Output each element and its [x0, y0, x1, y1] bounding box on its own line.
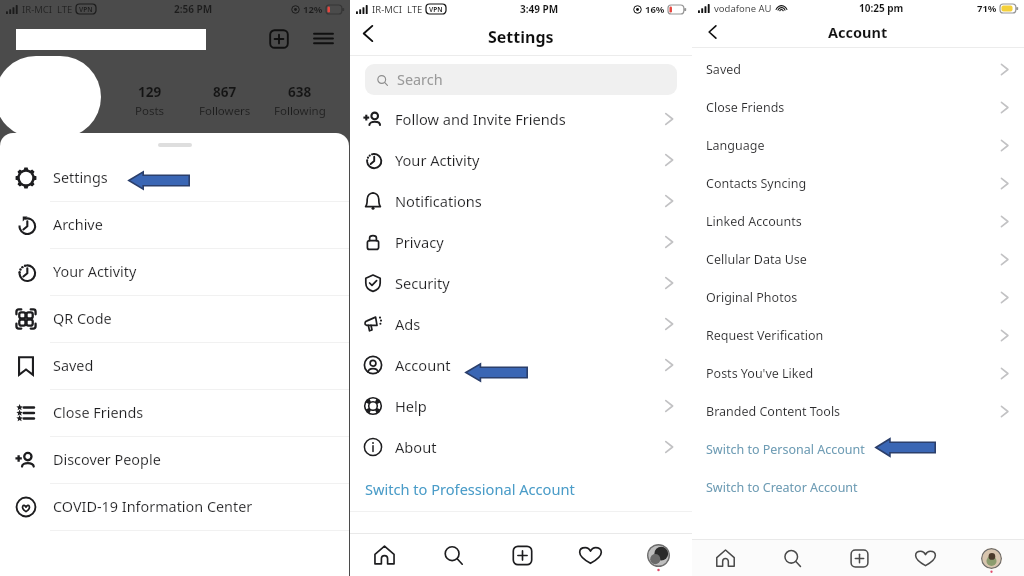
staticText: 12%: [303, 3, 323, 16]
button[interactable]: New post: [488, 534, 556, 576]
button[interactable]: Account: [350, 344, 692, 385]
staticText: Following: [274, 103, 326, 119]
staticText: LTE: [57, 3, 73, 16]
button[interactable]: Branded Content Tools: [692, 392, 1024, 430]
staticText: Security: [395, 273, 450, 293]
staticText: Followers: [199, 103, 251, 119]
button[interactable]: Switch to Professional Account: [350, 467, 692, 511]
button[interactable]: Archive: [0, 202, 349, 248]
button[interactable]: Search: [365, 64, 677, 95]
button[interactable]: Your Activity: [350, 139, 692, 180]
staticText: VPN: [429, 5, 443, 14]
staticText: IR-MCI: [22, 3, 53, 16]
button[interactable]: Search: [759, 540, 826, 576]
staticText: LTE: [407, 3, 423, 16]
staticText: Ads: [395, 314, 421, 334]
button[interactable]: Notifications: [350, 180, 692, 221]
staticText: Saved: [706, 61, 741, 78]
button[interactable]: Contacts Syncing: [692, 164, 1024, 202]
button[interactable]: Profile: [958, 540, 1024, 576]
staticText: vodafone AU: [714, 2, 772, 15]
button[interactable]: Home: [692, 540, 759, 576]
button[interactable]: Help: [350, 385, 692, 426]
button[interactable]: Home: [350, 534, 419, 576]
button[interactable]: Switch to Creator Account: [692, 468, 1024, 506]
staticText: 129: [138, 83, 162, 101]
staticText: Language: [706, 137, 765, 154]
staticText: Close Friends: [53, 403, 144, 423]
staticText: Follow and Invite Friends: [395, 109, 566, 129]
staticText: COVID-19 Information Center: [53, 497, 253, 517]
button[interactable]: Close Friends: [692, 88, 1024, 126]
staticText: Search: [397, 70, 443, 90]
staticText: QR Code: [53, 309, 112, 329]
button[interactable]: Privacy: [350, 221, 692, 262]
staticText: Cellular Data Use: [706, 251, 807, 268]
staticText: Linked Accounts: [706, 213, 802, 230]
button[interactable]: About: [350, 426, 692, 467]
button[interactable]: Linked Accounts: [692, 202, 1024, 240]
button[interactable]: Switch to Personal Account: [692, 430, 1024, 468]
button[interactable]: Saved: [692, 50, 1024, 88]
button[interactable]: Security: [350, 262, 692, 303]
staticText: Your Activity: [53, 262, 137, 282]
button[interactable]: Back: [353, 18, 384, 49]
staticText: Privacy: [395, 232, 444, 252]
staticText: 10:25 pm: [859, 1, 904, 15]
staticText: Saved: [53, 356, 94, 376]
staticText: Settings: [488, 26, 554, 48]
staticText: 3:49 PM: [520, 2, 559, 16]
button[interactable]: Profile: [624, 534, 692, 576]
staticText: Notifications: [395, 191, 482, 211]
staticText: 16%: [645, 3, 665, 16]
staticText: Settings: [53, 168, 108, 188]
staticText: Close Friends: [706, 99, 785, 116]
staticText: Posts: [135, 103, 165, 119]
staticText: VPN: [79, 5, 93, 14]
staticText: 867: [213, 83, 237, 101]
staticText: IR-MCI: [372, 3, 403, 16]
button[interactable]: Close Friends: [0, 390, 349, 436]
staticText: About: [395, 437, 437, 457]
button[interactable]: Posts You've Liked: [692, 354, 1024, 392]
button[interactable]: QR Code: [0, 296, 349, 342]
staticText: Switch to Creator Account: [706, 479, 858, 496]
staticText: Branded Content Tools: [706, 403, 841, 420]
staticText: Discover People: [53, 450, 161, 470]
staticText: Contacts Syncing: [706, 175, 807, 192]
staticText: Switch to Professional Account: [365, 479, 575, 499]
staticText: Help: [395, 396, 427, 416]
staticText: Archive: [53, 215, 103, 235]
button[interactable]: Menu: [313, 28, 334, 49]
button[interactable]: New post: [268, 28, 290, 50]
staticText: Account: [828, 22, 888, 42]
staticText: 638: [288, 83, 312, 101]
button[interactable]: Ads: [350, 303, 692, 344]
button[interactable]: COVID-19 Information Center: [0, 484, 349, 530]
button[interactable]: Original Photos: [692, 278, 1024, 316]
staticText: Account: [395, 355, 451, 375]
staticText: Switch to Personal Account: [706, 441, 865, 458]
button[interactable]: Cellular Data Use: [692, 240, 1024, 278]
button[interactable]: Activity: [556, 534, 624, 576]
staticText: Your Activity: [395, 150, 480, 170]
button[interactable]: New post: [826, 540, 892, 576]
staticText: 2:56 PM: [174, 2, 213, 16]
button[interactable]: Activity: [892, 540, 958, 576]
button[interactable]: Request Verification: [692, 316, 1024, 354]
button[interactable]: Your Activity: [0, 249, 349, 295]
staticText: 71%: [977, 2, 997, 15]
button[interactable]: Follow and Invite Friends: [350, 98, 692, 139]
staticText: Request Verification: [706, 327, 824, 344]
staticText: Posts You've Liked: [706, 365, 814, 382]
staticText: Original Photos: [706, 289, 798, 306]
button[interactable]: Settings: [0, 155, 349, 201]
button[interactable]: Search: [419, 534, 488, 576]
button[interactable]: Saved: [0, 343, 349, 389]
button[interactable]: Discover People: [0, 437, 349, 483]
button[interactable]: Back: [697, 16, 728, 47]
button[interactable]: Language: [692, 126, 1024, 164]
